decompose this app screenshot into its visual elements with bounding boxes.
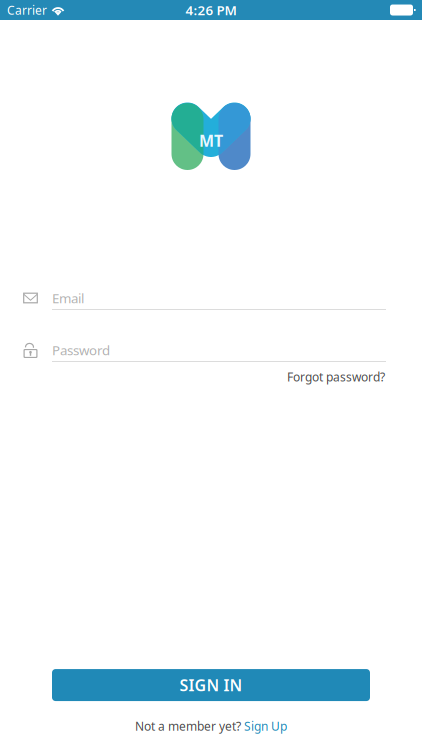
button[interactable]: SIGN IN (52, 669, 370, 701)
staticText: SIGN IN (179, 674, 242, 696)
staticText: Password (52, 341, 110, 359)
staticText: MT (199, 130, 223, 151)
staticText: Carrier (7, 2, 47, 18)
staticText: Forgot password? (287, 369, 385, 385)
staticText: Sign Up (244, 718, 287, 734)
staticText: Email (52, 289, 84, 307)
staticText: 4:26 PM (185, 1, 236, 19)
staticText: Not a member yet? (135, 718, 241, 734)
button[interactable]: Not a member yet? (135, 718, 287, 734)
button[interactable]: Forgot password? (287, 369, 385, 385)
